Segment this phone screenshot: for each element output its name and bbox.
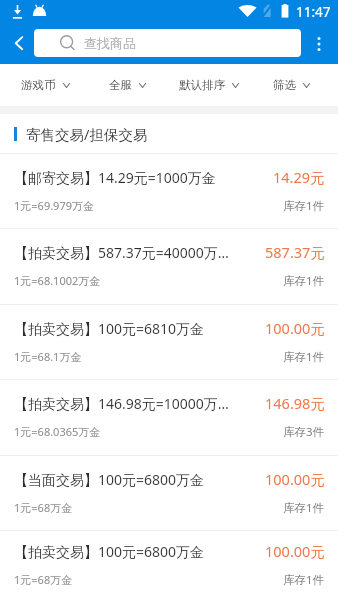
staticText: 游戏币 xyxy=(21,78,56,92)
button[interactable]: 【邮寄交易】14.29元=1000万金 xyxy=(0,153,338,228)
staticText: 【拍卖交易】587.37元=40000万… xyxy=(14,243,229,262)
button[interactable]: 【当面交易】100元=6800万金 xyxy=(0,455,338,530)
staticText: 1元=68万金 xyxy=(14,500,73,515)
staticText: 100.00元 xyxy=(265,318,325,338)
button[interactable]: 全服 xyxy=(86,64,168,106)
button[interactable]: 【拍卖交易】587.37元=40000万… xyxy=(0,228,338,304)
staticText: 100.00元 xyxy=(265,541,325,561)
button[interactable]: 查找商品 xyxy=(34,29,301,57)
staticText: 100.00元 xyxy=(265,469,325,489)
staticText: 1元=68.1002万金 xyxy=(14,273,101,288)
staticText: 库存1件 xyxy=(283,500,325,516)
staticText: 1元=68.0365万金 xyxy=(14,424,101,439)
button[interactable]: 默认排序 xyxy=(168,64,250,106)
staticText: 146.98元 xyxy=(265,393,325,413)
staticText: 【拍卖交易】146.98元=10000万… xyxy=(14,394,229,413)
staticText: 寄售交易/担保交易 xyxy=(26,124,148,144)
button[interactable]: More options xyxy=(304,24,334,64)
staticText: 【拍卖交易】100元=6810万金 xyxy=(14,319,205,338)
staticText: 11:47 xyxy=(296,3,331,21)
staticText: 查找商品 xyxy=(84,35,136,51)
staticText: 库存1件 xyxy=(283,198,325,214)
button[interactable]: 游戏币 xyxy=(4,64,86,106)
staticText: 1元=69.979万金 xyxy=(14,198,94,213)
staticText: 库存3件 xyxy=(283,424,325,440)
button[interactable]: Back xyxy=(0,24,34,64)
button[interactable]: 【拍卖交易】146.98元=10000万… xyxy=(0,379,338,455)
button[interactable]: 【拍卖交易】100元=6800万金 xyxy=(0,530,338,600)
staticText: 【邮寄交易】14.29元=1000万金 xyxy=(14,168,216,187)
staticText: 1元=68.1万金 xyxy=(14,349,82,364)
staticText: 库存1件 xyxy=(283,572,325,588)
staticText: 全服 xyxy=(109,78,132,92)
staticText: 1元=68万金 xyxy=(14,572,73,587)
staticText: 默认排序 xyxy=(179,78,225,92)
staticText: 库存1件 xyxy=(283,349,325,365)
staticText: 587.37元 xyxy=(265,242,325,262)
staticText: 库存1件 xyxy=(283,273,325,289)
staticText: 【当面交易】100元=6800万金 xyxy=(14,470,205,489)
staticText: 【拍卖交易】100元=6800万金 xyxy=(14,542,205,561)
button[interactable]: 筛选 xyxy=(250,64,332,106)
button[interactable]: 【拍卖交易】100元=6810万金 xyxy=(0,304,338,379)
staticText: 14.29元 xyxy=(273,167,325,187)
staticText: 筛选 xyxy=(273,78,296,92)
